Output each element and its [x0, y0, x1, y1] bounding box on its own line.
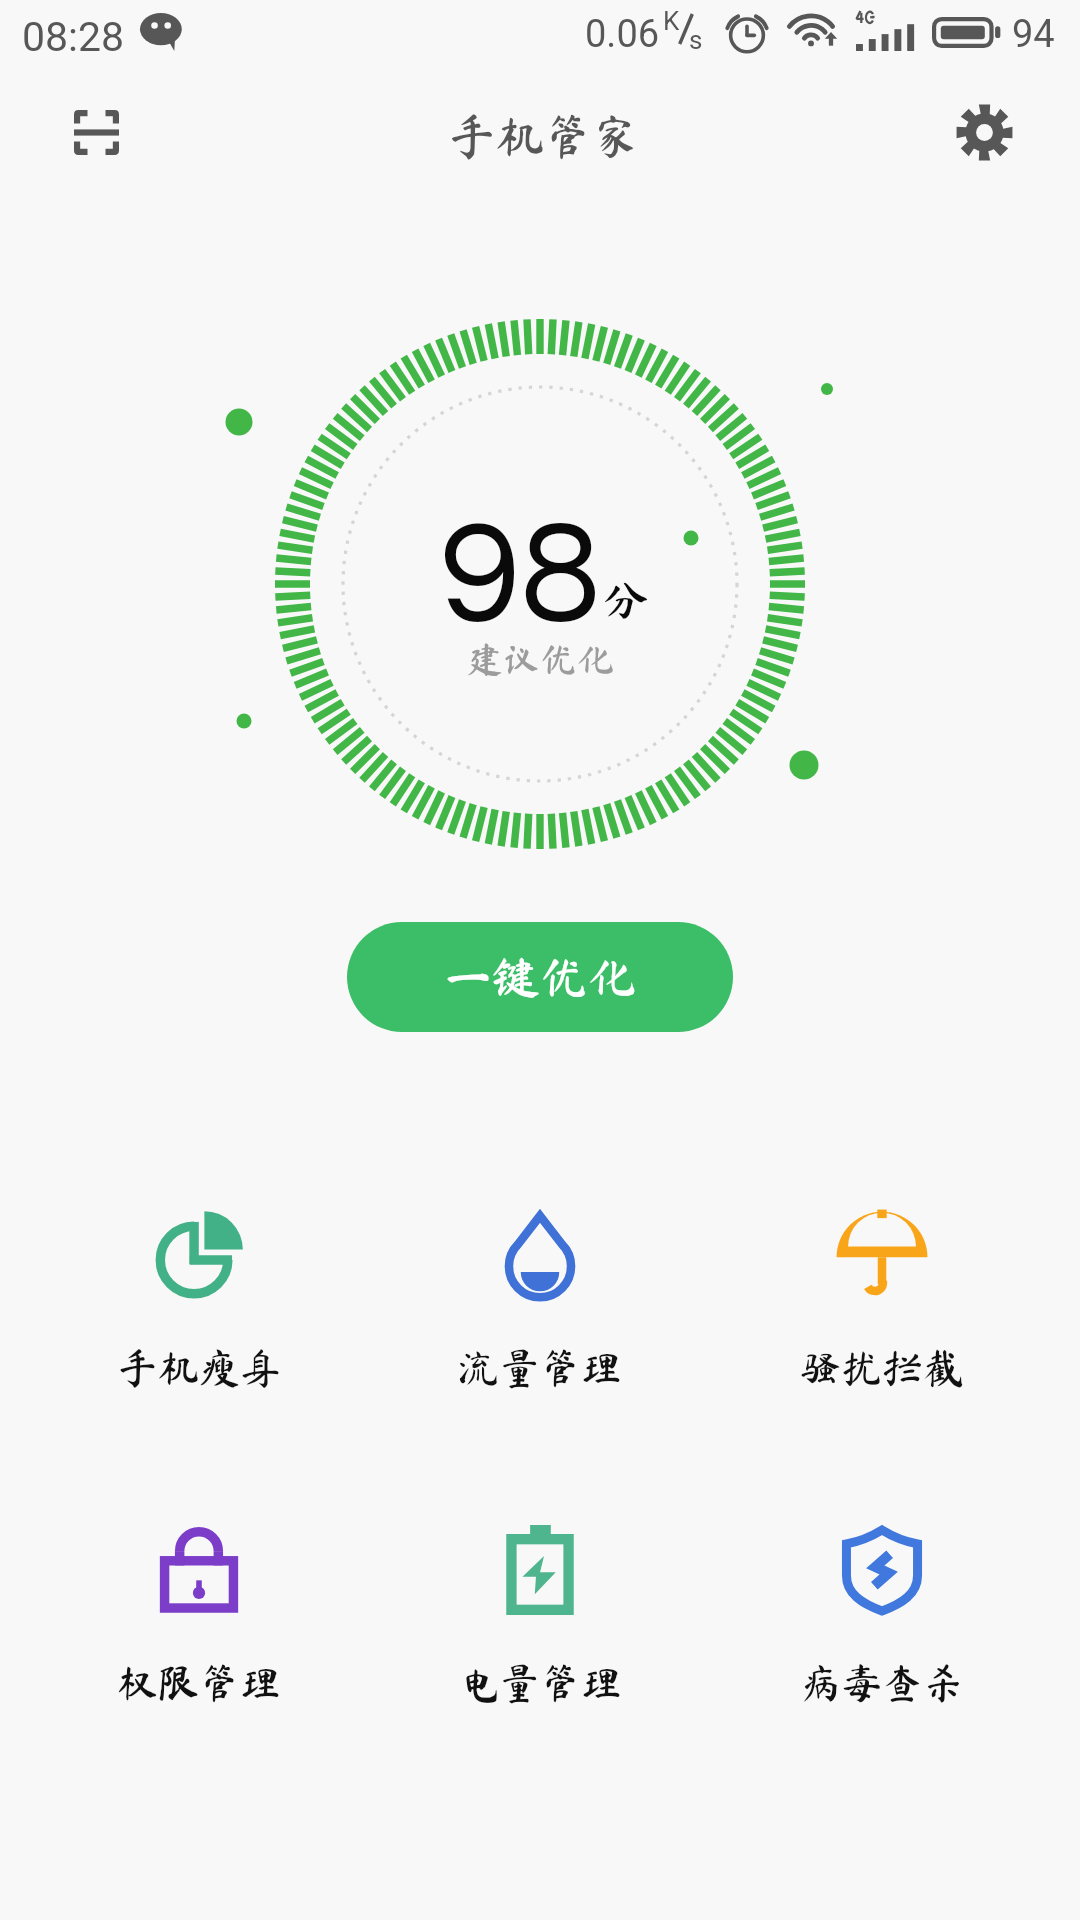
staticText: 手机管家 [448, 112, 641, 160]
button[interactable]: 骚扰拦截 [732, 1202, 1032, 1388]
staticText: 骚扰拦截 [800, 1347, 964, 1388]
staticText: 电量管理 [458, 1662, 622, 1703]
staticText: 手机瘦身 [117, 1347, 281, 1388]
staticText: 建议优化 [466, 640, 614, 677]
button[interactable]: 电量管理 [390, 1517, 690, 1703]
staticText: 08:28 [22, 13, 125, 61]
button[interactable]: Scan code [56, 92, 136, 172]
staticText: s [689, 25, 703, 55]
staticText: K [663, 6, 680, 36]
button[interactable]: 一键优化 [347, 922, 733, 1032]
button[interactable]: Settings [942, 90, 1026, 174]
staticText: 98 [440, 501, 601, 651]
staticText: 0.06 [585, 12, 660, 57]
button[interactable]: 权限管理 [49, 1517, 349, 1703]
staticText: 流量管理 [458, 1347, 622, 1388]
staticText: 分 [603, 577, 649, 623]
staticText: 94 [1012, 12, 1055, 57]
button[interactable]: 病毒查杀 [732, 1517, 1032, 1703]
staticText: 病毒查杀 [800, 1662, 964, 1703]
staticText: 权限管理 [117, 1662, 281, 1703]
button[interactable]: 手机瘦身 [49, 1202, 349, 1388]
staticText: 一键优化 [444, 953, 637, 1001]
button[interactable]: 流量管理 [390, 1202, 690, 1388]
